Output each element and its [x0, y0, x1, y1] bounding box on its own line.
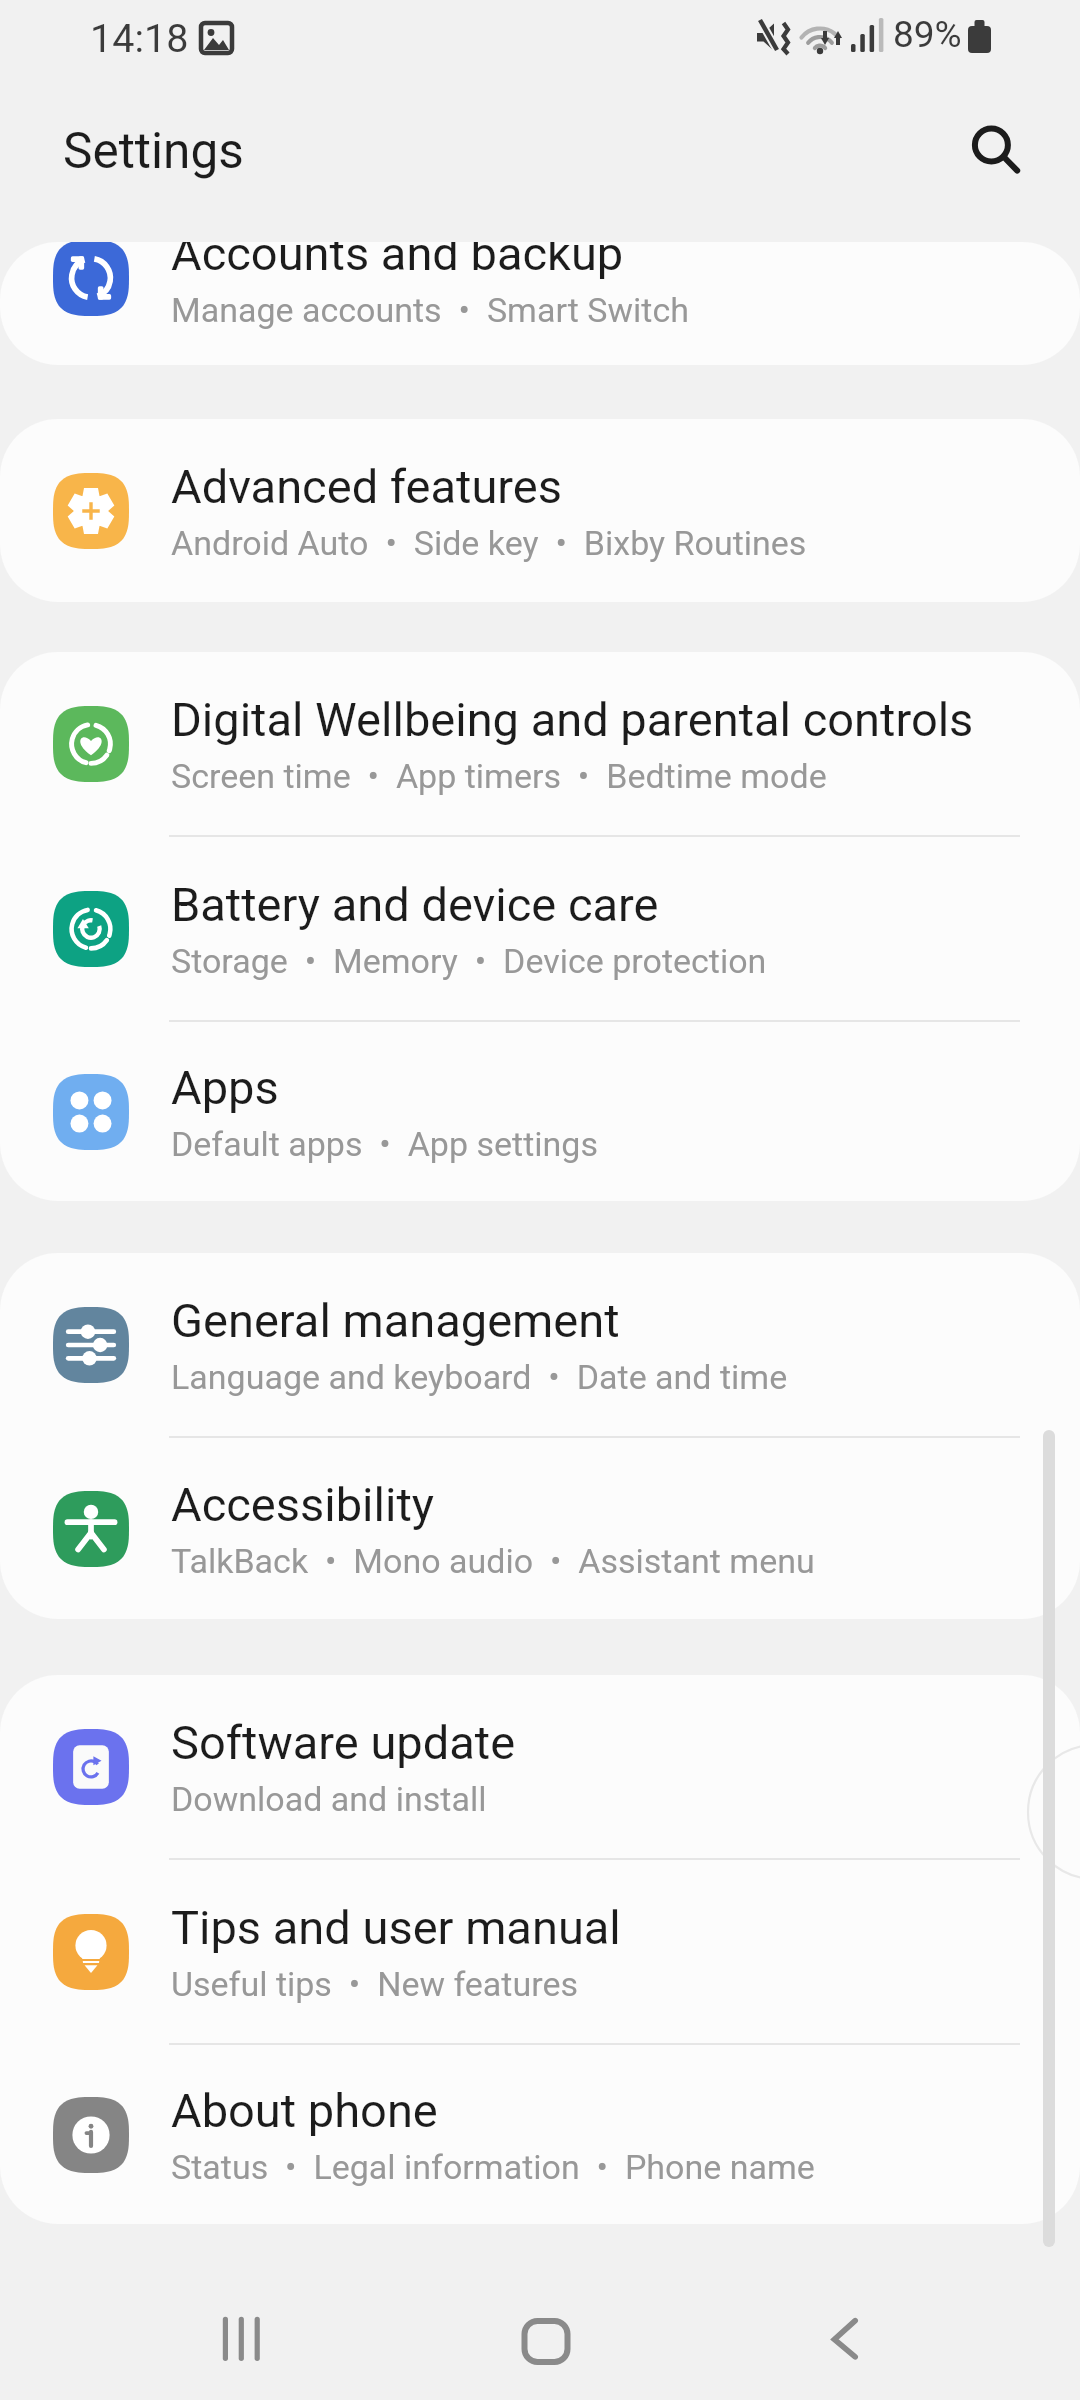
staticText: Storage • Memory • Device protection: [171, 941, 767, 981]
button[interactable]: Home: [473, 2269, 613, 2400]
staticText: About phone: [171, 2083, 438, 2138]
staticText: Battery and device care: [171, 877, 659, 932]
staticText: Download and install: [171, 1779, 487, 1819]
button[interactable]: General management: [0, 1253, 1080, 1436]
staticText: Accounts and backup: [171, 242, 624, 281]
staticText: 89%: [893, 13, 962, 56]
button[interactable]: Software update: [0, 1675, 1080, 1858]
staticText: 14:18: [90, 15, 189, 61]
staticText: General management: [171, 1293, 620, 1348]
staticText: Default apps • App settings: [171, 1124, 598, 1164]
staticText: Settings: [63, 122, 244, 180]
button[interactable]: Search: [944, 104, 1040, 200]
button[interactable]: About phone: [0, 2045, 1080, 2224]
staticText: Tips and user manual: [171, 1900, 621, 1955]
staticText: Manage accounts • Smart Switch: [171, 290, 689, 330]
button[interactable]: Advanced features: [0, 419, 1080, 602]
button[interactable]: Apps: [0, 1022, 1080, 1201]
button[interactable]: Accounts and backup: [0, 242, 1080, 365]
staticText: Screen time • App timers • Bedtime mode: [171, 756, 827, 796]
button[interactable]: Tips and user manual: [0, 1860, 1080, 2043]
staticText: TalkBack • Mono audio • Assistant menu: [171, 1541, 815, 1581]
button[interactable]: Battery and device care: [0, 837, 1080, 1020]
staticText: Language and keyboard • Date and time: [171, 1357, 788, 1397]
button[interactable]: Accessibility: [0, 1438, 1080, 1619]
staticText: Advanced features: [171, 459, 563, 514]
staticText: Digital Wellbeing and parental controls: [171, 692, 974, 747]
staticText: Apps: [171, 1060, 279, 1115]
button[interactable]: Recent apps: [161, 2269, 301, 2400]
button[interactable]: Back: [785, 2269, 925, 2400]
staticText: Useful tips • New features: [171, 1964, 578, 2004]
staticText: Status • Legal information • Phone name: [171, 2147, 815, 2187]
staticText: Accessibility: [171, 1477, 435, 1532]
button[interactable]: Digital Wellbeing and parental controls: [0, 652, 1080, 835]
staticText: Android Auto • Side key • Bixby Routines: [171, 523, 807, 563]
staticText: Software update: [171, 1715, 516, 1770]
